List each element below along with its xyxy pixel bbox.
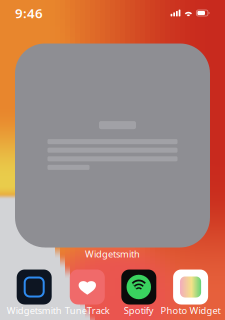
staticText: Widgetsmith	[7, 304, 62, 317]
button[interactable]: Photo Widget	[165, 269, 217, 316]
staticText: TuneTrack	[65, 304, 110, 317]
staticText: 9:46	[15, 4, 43, 22]
staticText: Spotify	[124, 304, 154, 317]
button[interactable]: TuneTrack	[61, 269, 113, 316]
staticText: Photo Widget	[161, 304, 221, 317]
button[interactable]: Widgetsmith	[8, 269, 60, 316]
button[interactable]: Spotify	[113, 269, 165, 316]
button[interactable]	[15, 43, 210, 247]
staticText: Widgetsmith	[85, 248, 140, 260]
